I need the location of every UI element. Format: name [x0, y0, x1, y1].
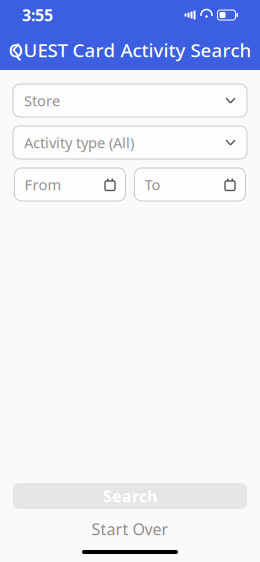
staticText: Start Over	[91, 518, 168, 540]
button[interactable]: From date	[14, 168, 125, 201]
button[interactable]: Activity type (All)	[13, 126, 247, 159]
staticText: 3:55	[22, 4, 53, 26]
staticText: QUEST Card Activity Search	[8, 38, 251, 62]
button[interactable]: Back	[0, 30, 32, 70]
staticText: From	[24, 175, 61, 194]
button[interactable]: Start Over	[13, 516, 247, 542]
staticText: To	[144, 175, 160, 194]
staticText: Search	[103, 485, 157, 507]
button[interactable]: Search	[13, 483, 247, 509]
staticText: Store	[24, 91, 60, 110]
staticText: Activity type (All)	[24, 133, 134, 152]
button[interactable]: Store	[13, 84, 247, 117]
button[interactable]: To date	[134, 168, 245, 201]
